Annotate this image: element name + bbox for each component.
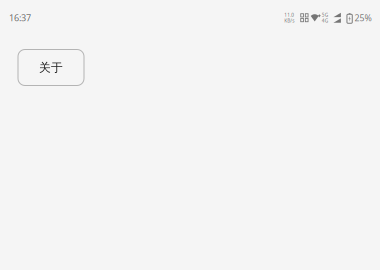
staticText: 5G xyxy=(322,12,328,18)
button[interactable]: 关于 xyxy=(18,49,84,85)
staticText: 11.0 xyxy=(284,12,294,18)
staticText: KB/s xyxy=(284,17,294,24)
staticText: 25% xyxy=(354,12,371,24)
staticText: 4G xyxy=(322,17,328,24)
staticText: 16:37 xyxy=(9,12,31,24)
staticText: 关于 xyxy=(39,60,63,75)
